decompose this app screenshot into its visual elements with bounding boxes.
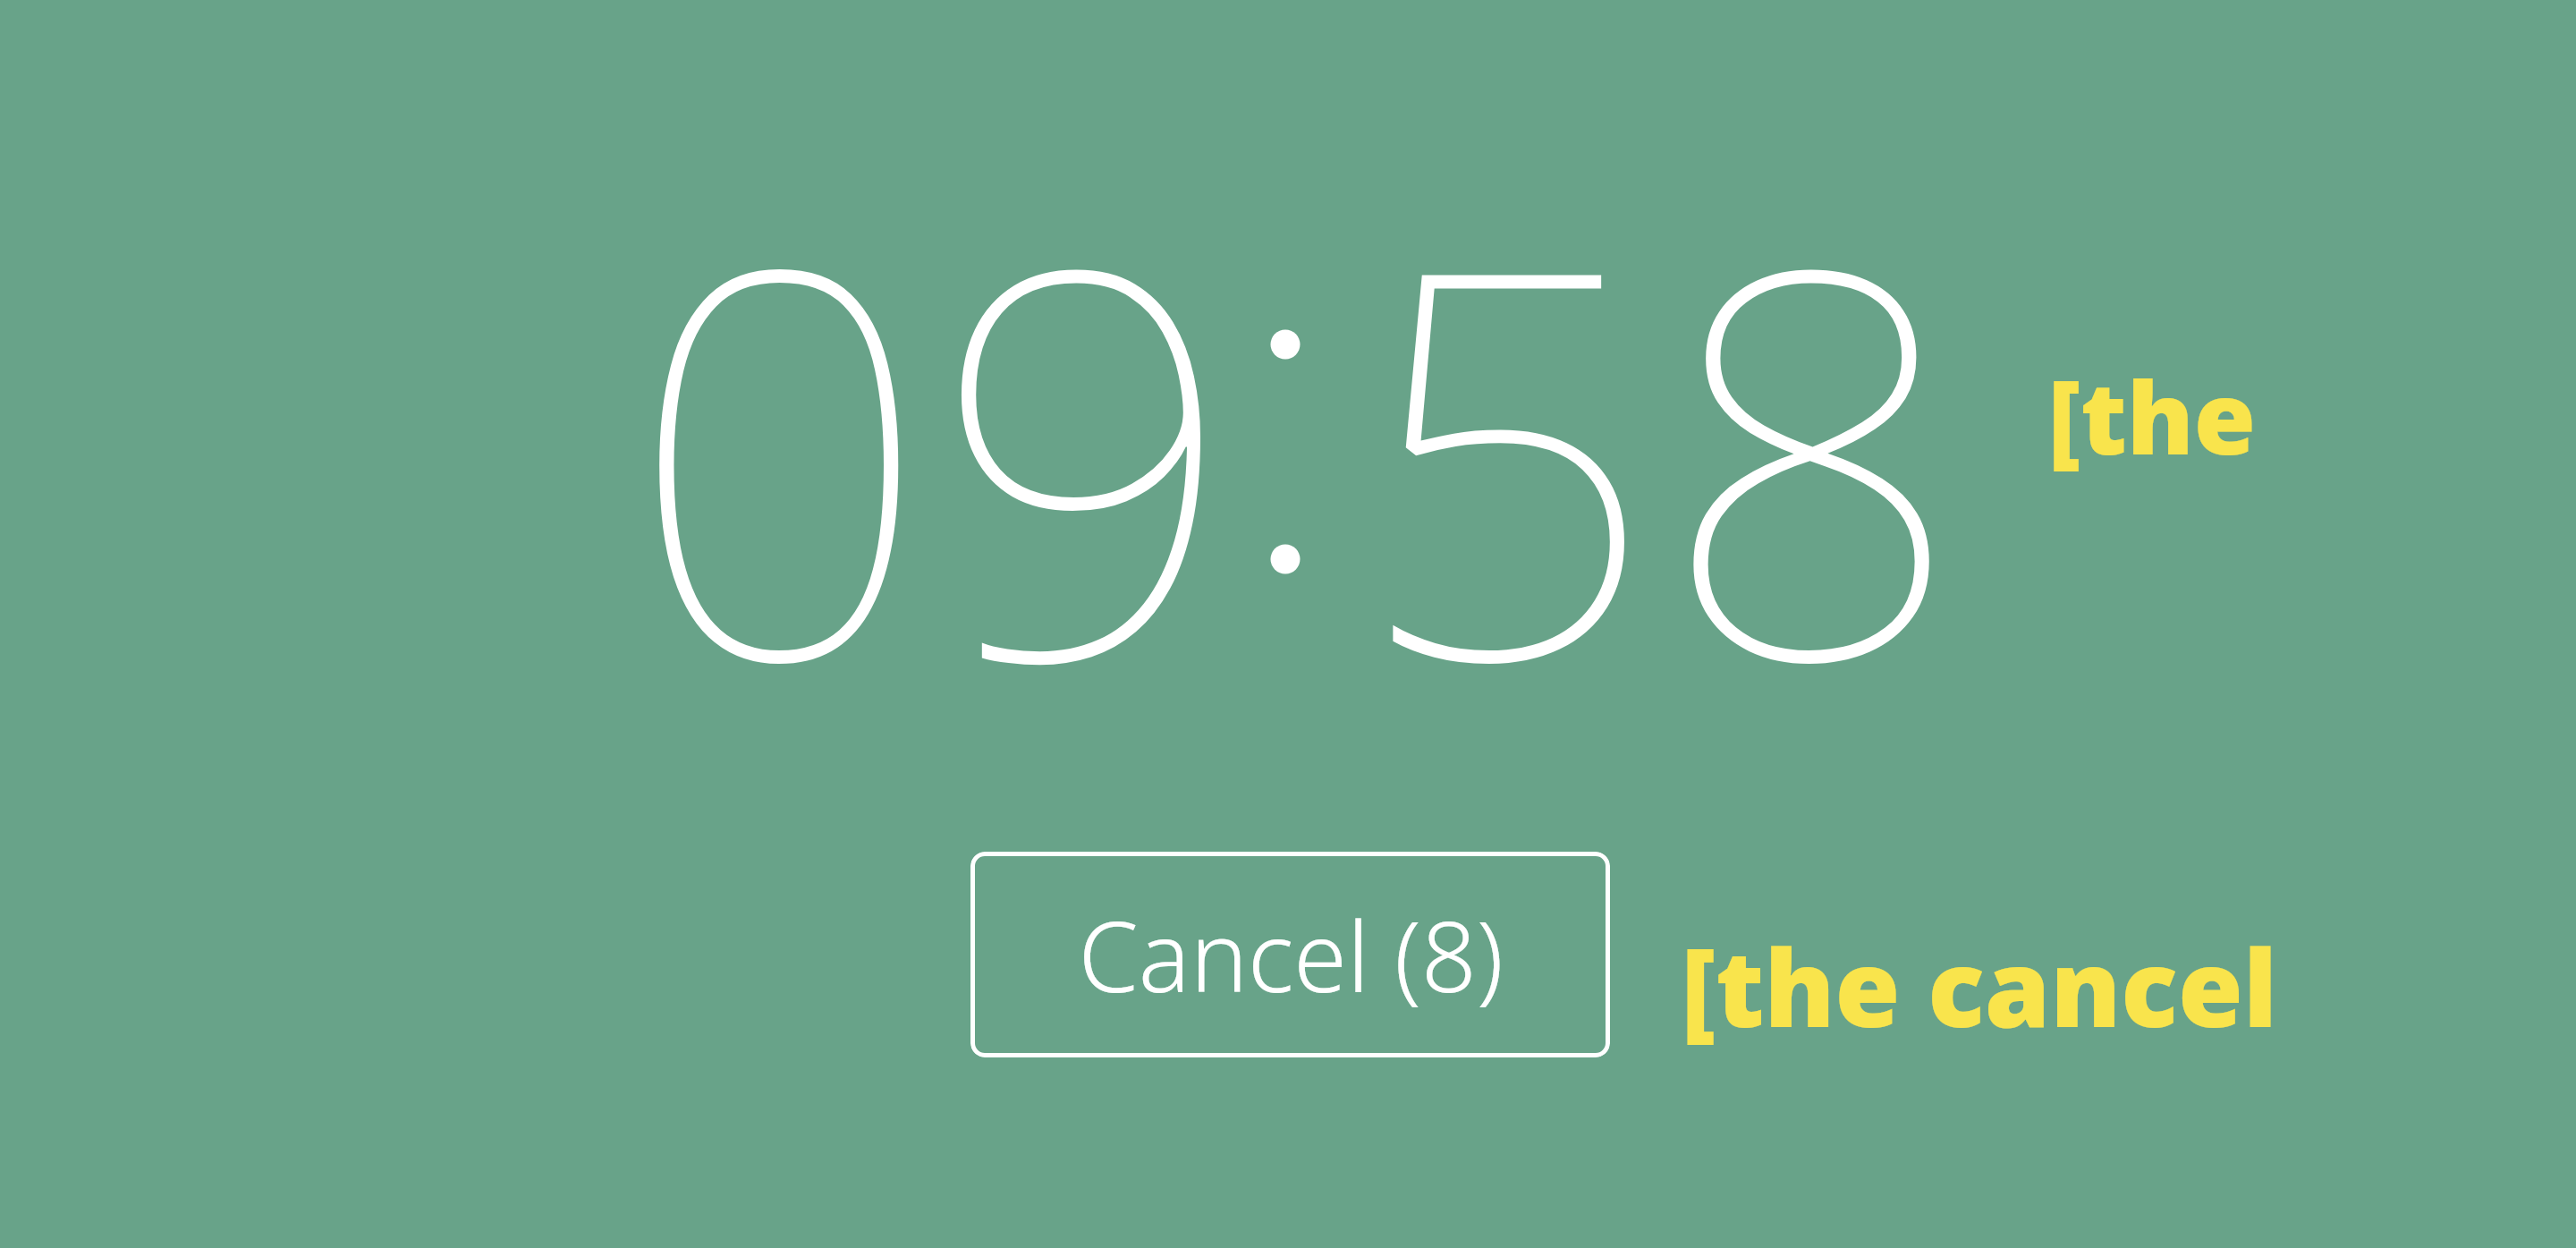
staticText: [the time] bbox=[2048, 347, 2549, 472]
button[interactable]: Cancel (8) bbox=[970, 852, 1610, 1057]
staticText: [the cancel cta] bbox=[1682, 914, 2487, 1048]
staticText: Cancel (8) bbox=[1078, 889, 1504, 1021]
staticText: 58 bbox=[1353, 85, 1965, 711]
staticText: 09 bbox=[626, 85, 1238, 711]
